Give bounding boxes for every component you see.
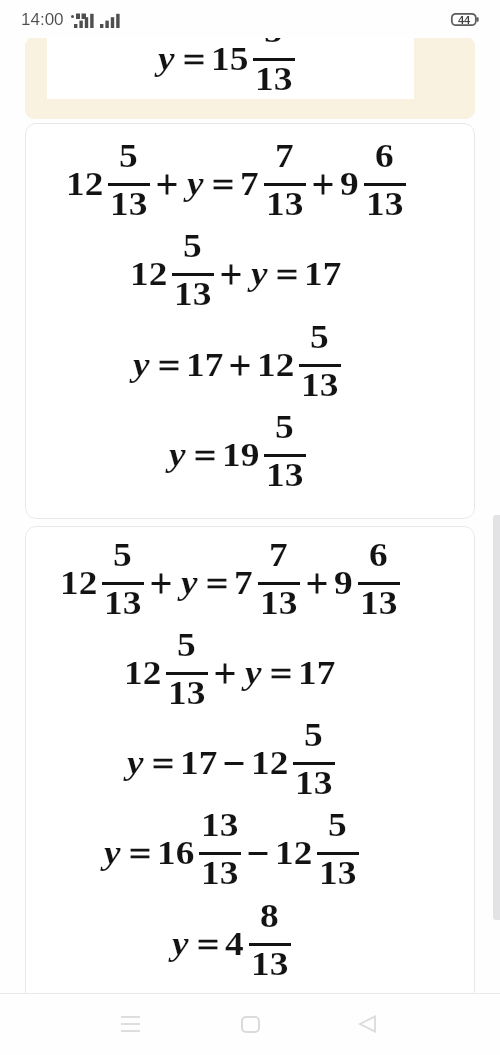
- staticText: 5: [310, 319, 329, 356]
- button[interactable]: Back: [339, 996, 395, 1052]
- staticText: 8: [260, 898, 279, 935]
- staticText: 13: [104, 585, 141, 622]
- staticText: 15: [211, 41, 248, 78]
- staticText: 7: [240, 166, 259, 203]
- staticText: 17: [298, 655, 335, 692]
- button[interactable]: 12: [25, 526, 475, 993]
- staticText: 12: [257, 347, 294, 384]
- staticText: 5: [113, 537, 132, 574]
- staticText: 13: [201, 807, 238, 844]
- staticText: 17: [186, 347, 223, 384]
- staticText: y: [133, 347, 150, 384]
- staticText: 5: [304, 717, 323, 754]
- staticText: 13: [266, 186, 303, 223]
- staticText: y: [251, 256, 268, 293]
- staticText: 13: [360, 585, 397, 622]
- staticText: 7: [269, 537, 288, 574]
- staticText: 12: [275, 835, 312, 872]
- staticText: 7: [275, 138, 294, 175]
- staticText: 13: [260, 585, 297, 622]
- staticText: 12: [124, 655, 161, 692]
- staticText: y: [169, 437, 186, 474]
- staticText: 13: [110, 186, 147, 223]
- staticText: 13: [295, 765, 332, 802]
- button[interactable]: y: [25, 38, 475, 119]
- staticText: y: [187, 166, 204, 203]
- staticText: 6: [375, 138, 394, 175]
- staticText: 14:00: [21, 10, 64, 29]
- staticText: y: [104, 835, 121, 872]
- staticText: 13: [319, 855, 356, 892]
- staticText: 12: [66, 166, 103, 203]
- button[interactable]: Home: [222, 996, 278, 1052]
- staticText: 5: [119, 138, 138, 175]
- staticText: 5: [275, 409, 294, 446]
- staticText: 5: [177, 627, 196, 664]
- staticText: 44: [458, 14, 471, 26]
- button[interactable]: Recents: [102, 996, 158, 1052]
- staticText: 7: [234, 565, 253, 602]
- staticText: y: [158, 41, 175, 78]
- staticText: 13: [174, 276, 211, 313]
- staticText: 9: [340, 166, 359, 203]
- staticText: 4: [225, 926, 244, 963]
- staticText: 13: [168, 675, 205, 712]
- staticText: 19: [222, 437, 259, 474]
- staticText: 13: [301, 367, 338, 404]
- staticText: 12: [251, 745, 288, 782]
- staticText: 13: [366, 186, 403, 223]
- button[interactable]: 12: [25, 123, 475, 519]
- staticText: y: [172, 926, 189, 963]
- staticText: 5: [264, 38, 283, 50]
- staticText: 17: [304, 256, 341, 293]
- staticText: 13: [251, 946, 288, 983]
- staticText: 12: [130, 256, 167, 293]
- staticText: 13: [266, 457, 303, 494]
- staticText: 12: [60, 565, 97, 602]
- staticText: y: [245, 655, 262, 692]
- staticText: y: [127, 745, 144, 782]
- staticText: 9: [334, 565, 353, 602]
- staticText: 17: [180, 745, 217, 782]
- staticText: 5: [183, 228, 202, 265]
- staticText: y: [181, 565, 198, 602]
- staticText: 16: [157, 835, 194, 872]
- staticText: 6: [369, 537, 388, 574]
- staticText: 13: [201, 855, 238, 892]
- staticText: 13: [255, 61, 292, 98]
- staticText: 5: [328, 807, 347, 844]
